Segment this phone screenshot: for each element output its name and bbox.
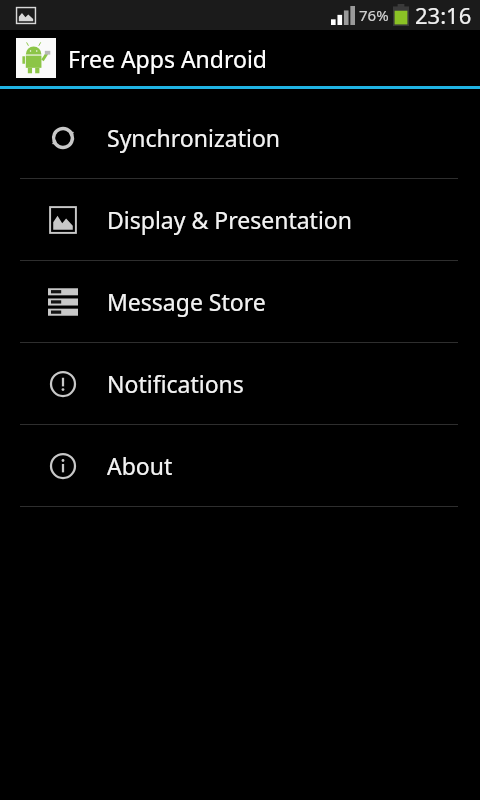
button[interactable]: About	[0, 425, 480, 506]
staticText: Synchronization	[107, 122, 281, 153]
button[interactable]: Notifications	[0, 343, 480, 424]
staticText: Display & Presentation	[107, 204, 352, 235]
staticText: Notifications	[107, 368, 244, 399]
button[interactable]: Synchronization	[0, 97, 480, 178]
other: Message Store	[48, 287, 78, 317]
staticText: 76%	[359, 5, 389, 25]
other: Display and Presentation	[48, 205, 78, 235]
button[interactable]: Display and Presentation	[0, 179, 480, 260]
other: Synchronization	[48, 123, 78, 153]
staticText: Free Apps Android	[68, 43, 267, 74]
other: Notifications	[48, 369, 78, 399]
button[interactable]: Message Store	[0, 261, 480, 342]
other: About	[48, 451, 78, 481]
staticText: 23:16	[415, 0, 472, 30]
staticText: About	[107, 450, 173, 481]
staticText: Message Store	[107, 286, 266, 317]
